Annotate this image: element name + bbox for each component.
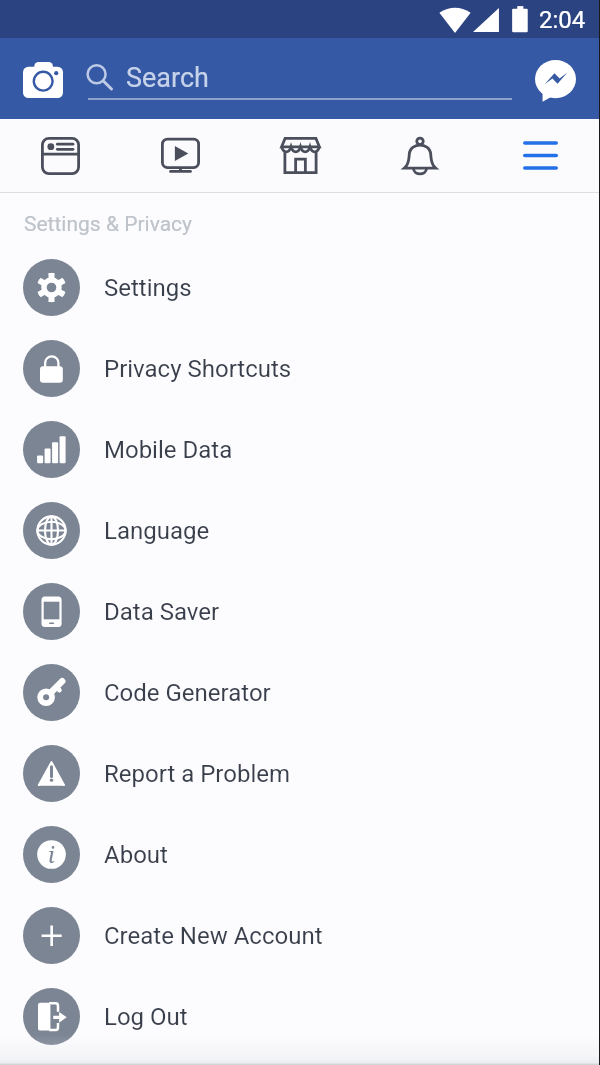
button[interactable]: Create New Account bbox=[0, 895, 600, 976]
button[interactable]: Data Saver bbox=[0, 571, 600, 652]
staticText: Create New Account bbox=[104, 922, 323, 950]
staticText: i bbox=[48, 839, 55, 869]
button[interactable]: Settings bbox=[0, 247, 600, 328]
staticText: Language bbox=[104, 517, 210, 545]
button[interactable]: Log Out bbox=[0, 976, 600, 1057]
button[interactable]: Mobile Data bbox=[0, 409, 600, 490]
button[interactable]: Language bbox=[0, 490, 600, 571]
staticText: Data Saver bbox=[104, 598, 220, 626]
staticText: About bbox=[104, 841, 168, 869]
staticText: Mobile Data bbox=[104, 436, 233, 464]
button[interactable]: Menu bbox=[480, 119, 600, 192]
button[interactable]: Marketplace bbox=[240, 119, 360, 192]
staticText: Search bbox=[126, 62, 209, 94]
staticText: Settings & Privacy bbox=[24, 212, 192, 237]
staticText: Report a Problem bbox=[104, 760, 291, 788]
button[interactable]: i bbox=[0, 814, 600, 895]
staticText: Log Out bbox=[104, 1003, 188, 1031]
staticText: Privacy Shortcuts bbox=[104, 355, 292, 383]
button[interactable]: Watch bbox=[120, 119, 240, 192]
button[interactable]: Camera bbox=[14, 53, 70, 104]
staticText: Code Generator bbox=[104, 679, 271, 707]
button[interactable]: Messenger bbox=[528, 52, 582, 104]
button[interactable]: Code Generator bbox=[0, 652, 600, 733]
button[interactable]: News Feed bbox=[0, 119, 120, 192]
staticText: Settings bbox=[104, 274, 192, 302]
button[interactable]: Privacy Shortcuts bbox=[0, 328, 600, 409]
staticText: 2:04 bbox=[539, 6, 586, 34]
button[interactable]: Report a Problem bbox=[0, 733, 600, 814]
button[interactable]: Notifications bbox=[360, 119, 480, 192]
